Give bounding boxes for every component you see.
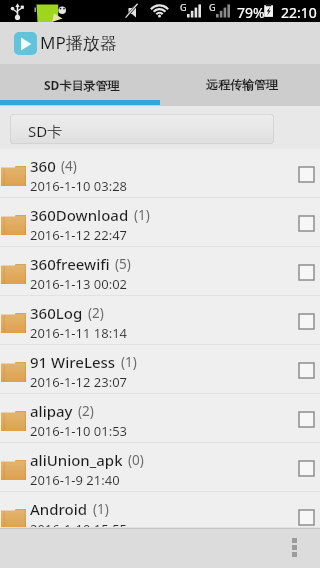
button[interactable]: SD卡 xyxy=(10,114,274,144)
staticText: 2016-1-12 23:07 xyxy=(30,373,128,391)
staticText: MP播放器 xyxy=(40,31,117,54)
staticText: Android xyxy=(30,499,88,519)
button[interactable]: Select Android xyxy=(286,492,320,528)
staticText: (1) xyxy=(121,353,137,371)
button[interactable]: Android xyxy=(0,492,320,528)
button[interactable]: Select alipay xyxy=(286,394,320,443)
staticText: (2) xyxy=(78,402,94,420)
button[interactable]: alipay xyxy=(0,394,320,443)
staticText: 2016-1-11 18:14 xyxy=(30,324,128,342)
staticText: 79% xyxy=(237,3,265,22)
staticText: G xyxy=(180,1,187,13)
staticText: (4) xyxy=(61,157,77,175)
staticText: (2) xyxy=(88,304,104,322)
staticText: G xyxy=(209,1,216,13)
button[interactable]: More options xyxy=(267,528,320,568)
button[interactable]: Select 360Download xyxy=(286,198,320,247)
staticText: 360Log xyxy=(30,303,83,323)
button[interactable]: aliUnion_apk xyxy=(0,443,320,492)
button[interactable]: 360 xyxy=(0,149,320,198)
button[interactable]: Select 91 WireLess xyxy=(286,345,320,394)
button[interactable]: 360Download xyxy=(0,198,320,247)
staticText: 远程传输管理 xyxy=(206,77,278,92)
staticText: aliUnion_apk xyxy=(30,450,123,470)
staticText: 22:10 xyxy=(281,3,317,22)
button[interactable]: Select aliUnion_apk xyxy=(286,443,320,492)
staticText: 360freewifi xyxy=(30,254,110,274)
button[interactable]: 91 WireLess xyxy=(0,345,320,394)
staticText: 360Download xyxy=(30,205,129,225)
staticText: 2016-1-12 22:47 xyxy=(30,226,128,244)
staticText: SD卡目录管理 xyxy=(44,77,120,93)
button[interactable]: Select 360Log xyxy=(286,296,320,345)
button[interactable]: Select 360 xyxy=(286,149,320,198)
staticText: 2016-1-10 15:55 xyxy=(30,520,128,538)
staticText: 2016-1-10 01:53 xyxy=(30,422,128,440)
staticText: 91 WireLess xyxy=(30,352,116,372)
staticText: 2016-1-13 00:02 xyxy=(30,275,128,293)
button[interactable]: 360freewifi xyxy=(0,247,320,296)
button[interactable]: 远程传输管理 xyxy=(160,64,320,106)
staticText: (1) xyxy=(93,500,109,518)
staticText: alipay xyxy=(30,401,73,421)
staticText: 2016-1-9 21:40 xyxy=(30,471,120,489)
staticText: (0) xyxy=(128,451,144,469)
staticText: 360 xyxy=(30,156,56,176)
staticText: SD卡 xyxy=(28,121,63,141)
staticText: (1) xyxy=(134,206,150,224)
button[interactable]: 360Log xyxy=(0,296,320,345)
button[interactable]: Select 360freewifi xyxy=(286,247,320,296)
button[interactable]: SD卡目录管理 xyxy=(0,64,160,106)
staticText: 2016-1-10 03:28 xyxy=(30,177,128,195)
staticText: (5) xyxy=(115,255,131,273)
